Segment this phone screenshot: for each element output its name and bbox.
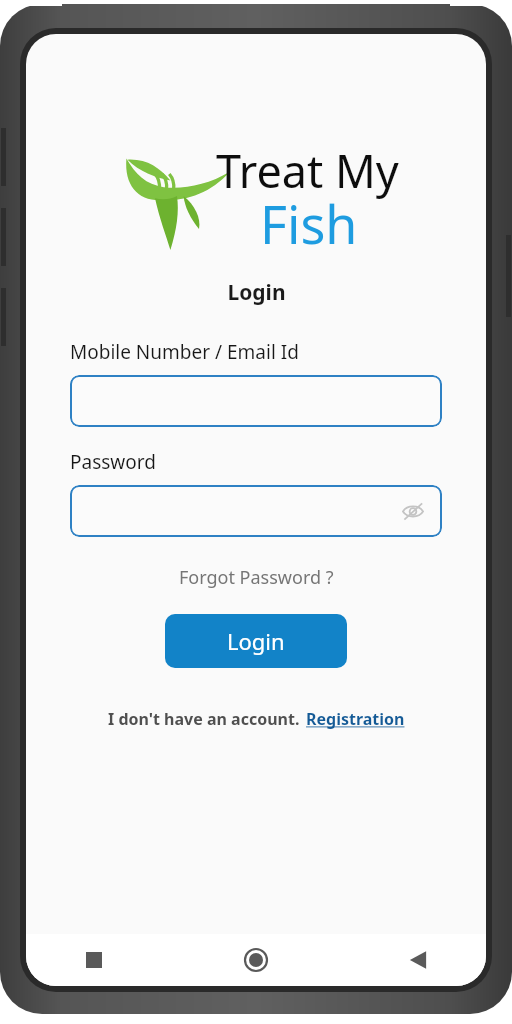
- button[interactable]: Login: [165, 614, 347, 668]
- staticText: Password: [70, 449, 156, 475]
- button[interactable]: Registration: [306, 708, 405, 730]
- staticText: Treat My: [216, 140, 399, 201]
- staticText: Registration: [306, 708, 405, 730]
- button[interactable]: Show password: [398, 496, 428, 526]
- staticText: Mobile Number / Email Id: [70, 339, 299, 365]
- staticText: Fish: [260, 188, 358, 259]
- button[interactable]: Recent apps: [74, 940, 114, 980]
- button[interactable]: Back: [398, 940, 438, 980]
- button[interactable]: [70, 375, 442, 427]
- staticText: Login: [227, 278, 286, 307]
- staticText: I don't have an account.: [108, 708, 300, 730]
- button[interactable]: Forgot Password ?: [171, 561, 342, 594]
- staticText: Forgot Password ?: [179, 565, 334, 590]
- button[interactable]: Home: [236, 940, 276, 980]
- staticText: Login: [227, 626, 285, 656]
- button[interactable]: Show password: [70, 485, 442, 537]
